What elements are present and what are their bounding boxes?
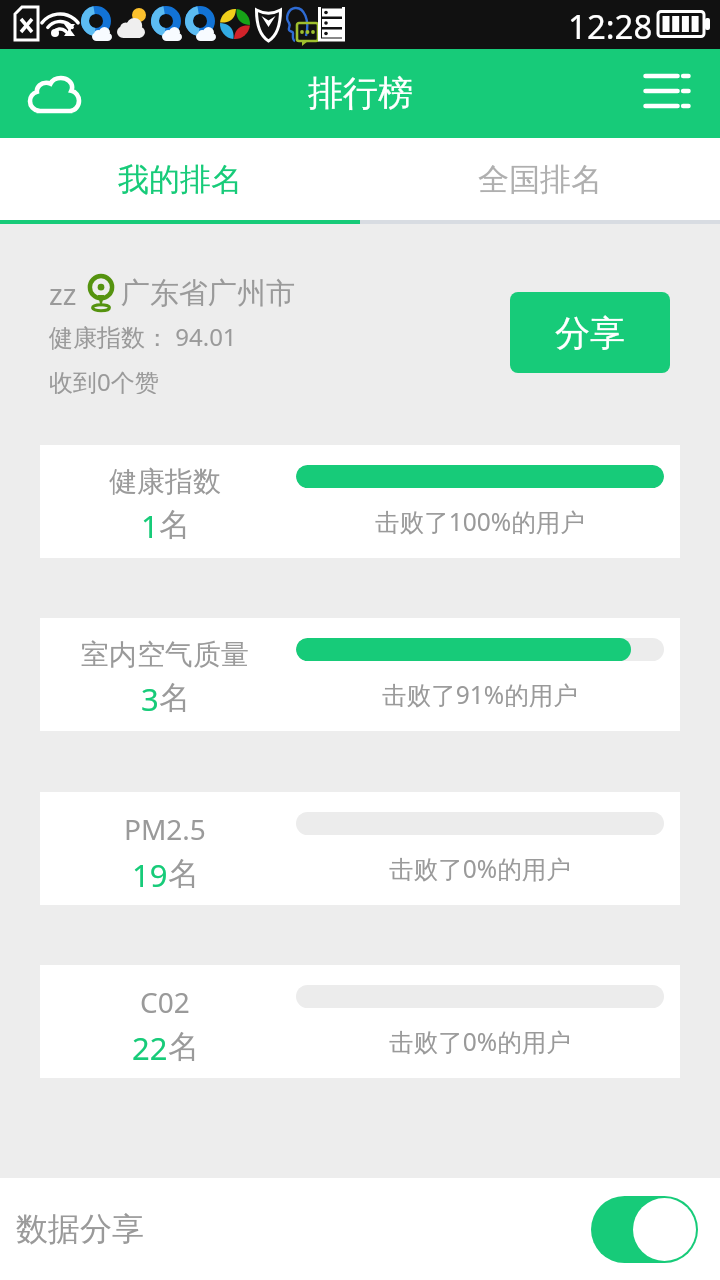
staticText: zz xyxy=(49,274,77,313)
staticText: 排行榜 xyxy=(308,71,413,115)
staticText: 名 xyxy=(168,1027,199,1066)
button[interactable]: 室内空气质量 xyxy=(40,618,680,731)
staticText: 1 xyxy=(141,505,159,547)
staticText: 全国排名 xyxy=(478,160,602,199)
staticText: 击败了0%的用户 xyxy=(296,1025,664,1058)
staticText: PM2.5 xyxy=(124,810,206,848)
button[interactable]: 分享 xyxy=(510,292,670,373)
button[interactable]: C02 xyxy=(40,965,680,1078)
staticText: 名 xyxy=(168,854,199,893)
staticText: 击败了91%的用户 xyxy=(296,678,664,711)
button[interactable]: 我的排名 xyxy=(0,138,360,220)
staticText: 数据分享 xyxy=(16,1209,144,1249)
staticText: 我的排名 xyxy=(118,160,242,199)
staticText: 12:28 xyxy=(568,4,653,49)
button[interactable]: Data sharing toggle xyxy=(591,1196,698,1263)
staticText: 广东省广州市 xyxy=(121,275,295,312)
staticText: 室内空气质量 xyxy=(81,637,249,672)
staticText: 健康指数 xyxy=(109,464,221,499)
staticText: 收到0个赞 xyxy=(49,365,159,394)
staticText: 击败了0%的用户 xyxy=(296,852,664,885)
button[interactable]: 健康指数 xyxy=(40,445,680,558)
staticText: 22 xyxy=(132,1027,168,1069)
button[interactable]: 全国排名 xyxy=(360,138,720,220)
staticText: 名 xyxy=(159,505,190,544)
button[interactable]: Weather xyxy=(14,58,94,130)
staticText: 击败了100%的用户 xyxy=(296,505,664,538)
staticText: 分享 xyxy=(555,311,625,355)
staticText: C02 xyxy=(140,983,190,1021)
button[interactable]: PM2.5 xyxy=(40,792,680,905)
staticText: 19 xyxy=(132,854,168,896)
button[interactable]: Menu xyxy=(629,55,705,127)
staticText: 健康指数： 94.01 xyxy=(49,320,237,353)
staticText: 3 xyxy=(141,678,159,720)
staticText: 名 xyxy=(159,678,190,717)
